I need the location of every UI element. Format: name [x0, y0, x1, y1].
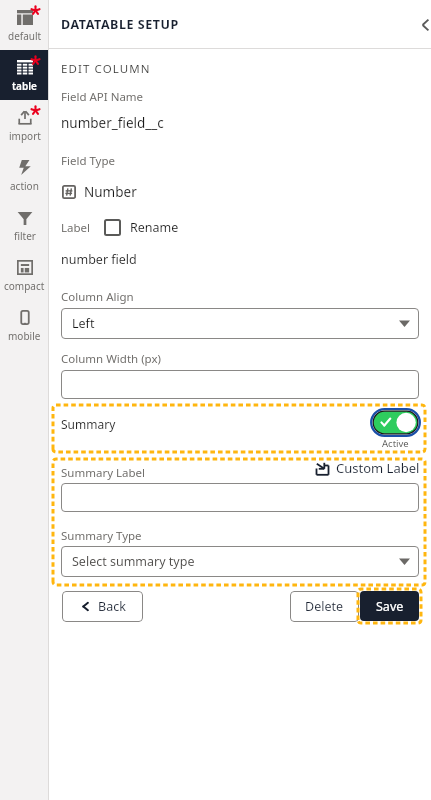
staticText: compact: [4, 279, 45, 293]
button[interactable]: Delete: [290, 591, 359, 622]
button[interactable]: filter: [0, 200, 49, 250]
button[interactable]: mobile: [0, 300, 49, 350]
button[interactable]: Custom Label: [315, 459, 420, 477]
staticText: Select summary type: [72, 553, 195, 570]
staticText: filter: [14, 229, 36, 243]
staticText: Number: [84, 183, 137, 201]
staticText: mobile: [8, 329, 41, 343]
staticText: table: [12, 79, 37, 93]
staticText: Save: [376, 598, 404, 615]
staticText: Summary Type: [61, 528, 142, 544]
staticText: Back: [98, 598, 126, 615]
button[interactable]: import: [0, 100, 49, 150]
staticText: Field API Name: [61, 89, 144, 105]
staticText: Label: [61, 220, 91, 236]
button[interactable]: Save: [360, 591, 419, 621]
button[interactable]: Collapse panel: [412, 12, 431, 38]
button[interactable]: Back: [62, 591, 143, 622]
staticText: Summary Label: [61, 465, 145, 481]
staticText: Column Align: [61, 289, 134, 305]
staticText: Column Width (px): [61, 351, 161, 367]
staticText: import: [9, 129, 41, 143]
button[interactable]: [61, 483, 419, 512]
staticText: EDIT COLUMN: [61, 61, 151, 77]
staticText: default: [8, 29, 42, 43]
button[interactable]: default: [0, 0, 49, 50]
button[interactable]: [61, 370, 419, 399]
staticText: action: [10, 179, 39, 193]
button[interactable]: table: [0, 50, 49, 100]
button[interactable]: Rename: [104, 219, 121, 236]
button[interactable]: Summary active toggle: [370, 408, 421, 450]
staticText: Summary: [61, 416, 116, 432]
button[interactable]: compact: [0, 250, 49, 300]
staticText: Delete: [305, 598, 344, 615]
staticText: Left: [72, 315, 95, 332]
staticText: number field: [61, 251, 137, 268]
staticText: Field Type: [61, 153, 116, 169]
staticText: Rename: [130, 219, 179, 236]
button[interactable]: Select summary type: [61, 546, 419, 577]
staticText: Active: [382, 437, 409, 450]
button[interactable]: action: [0, 150, 49, 200]
staticText: number_field__c: [61, 114, 164, 132]
staticText: Custom Label: [336, 459, 420, 477]
staticText: DATATABLE SETUP: [61, 16, 179, 33]
button[interactable]: Left: [61, 308, 419, 339]
